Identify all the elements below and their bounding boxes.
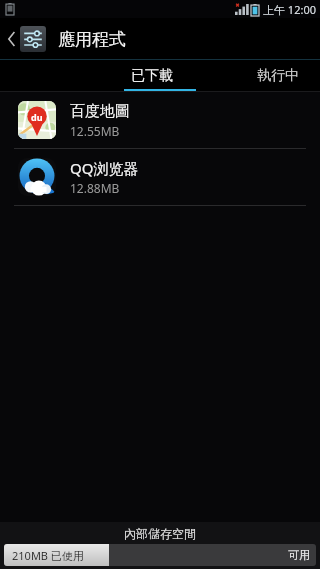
staticText: 上午 12:00 xyxy=(263,2,316,17)
staticText: 12.55MB xyxy=(70,123,120,139)
staticText: 可用 xyxy=(288,548,310,562)
button[interactable]: 210MB 已使用 xyxy=(4,544,316,566)
staticText: 210MB 已使用 xyxy=(12,548,84,563)
staticText: 12.88MB xyxy=(70,180,120,196)
button[interactable] xyxy=(0,60,96,92)
staticText: QQ浏览器 xyxy=(70,158,139,178)
button[interactable]: du xyxy=(0,92,320,148)
staticText: 執行中 xyxy=(257,67,299,85)
button[interactable]: QQ浏览器 xyxy=(0,149,320,205)
staticText: 百度地圖 xyxy=(70,102,130,121)
button[interactable]: 已下載 xyxy=(96,60,208,92)
staticText: 應用程式 xyxy=(58,29,126,50)
button[interactable]: 執行中 xyxy=(208,60,320,92)
button[interactable]: Back xyxy=(4,18,50,60)
staticText: du xyxy=(31,111,43,123)
staticText: 內部儲存空間 xyxy=(124,526,196,541)
staticText: 已下載 xyxy=(131,67,173,85)
